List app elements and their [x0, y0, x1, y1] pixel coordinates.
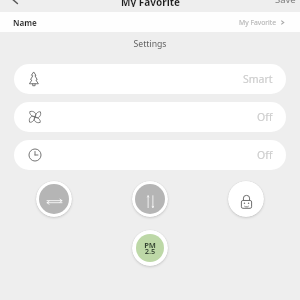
- staticText: Settings: [0, 38, 300, 50]
- button[interactable]: Vertical air flow: [135, 184, 165, 214]
- staticText: Smart: [243, 72, 273, 86]
- staticText: Name: [13, 17, 37, 28]
- button[interactable]: Back: [0, 0, 22, 10]
- button[interactable]: Name: [0, 12, 300, 32]
- staticText: Save: [275, 0, 296, 5]
- button[interactable]: Smart: [14, 64, 286, 94]
- staticText: PM 2.5: [144, 240, 156, 256]
- staticText: My Favorite: [239, 18, 277, 27]
- staticText: Off: [257, 148, 273, 162]
- staticText: My Favorite: [121, 0, 180, 7]
- button[interactable]: Child lock: [231, 184, 261, 214]
- button[interactable]: Save: [275, 0, 300, 5]
- button[interactable]: Horizontal air flow: [39, 184, 69, 214]
- button[interactable]: Off: [14, 140, 286, 170]
- button[interactable]: Off: [14, 102, 286, 132]
- staticText: Off: [257, 110, 273, 124]
- button[interactable]: PM 2.5: [136, 234, 164, 262]
